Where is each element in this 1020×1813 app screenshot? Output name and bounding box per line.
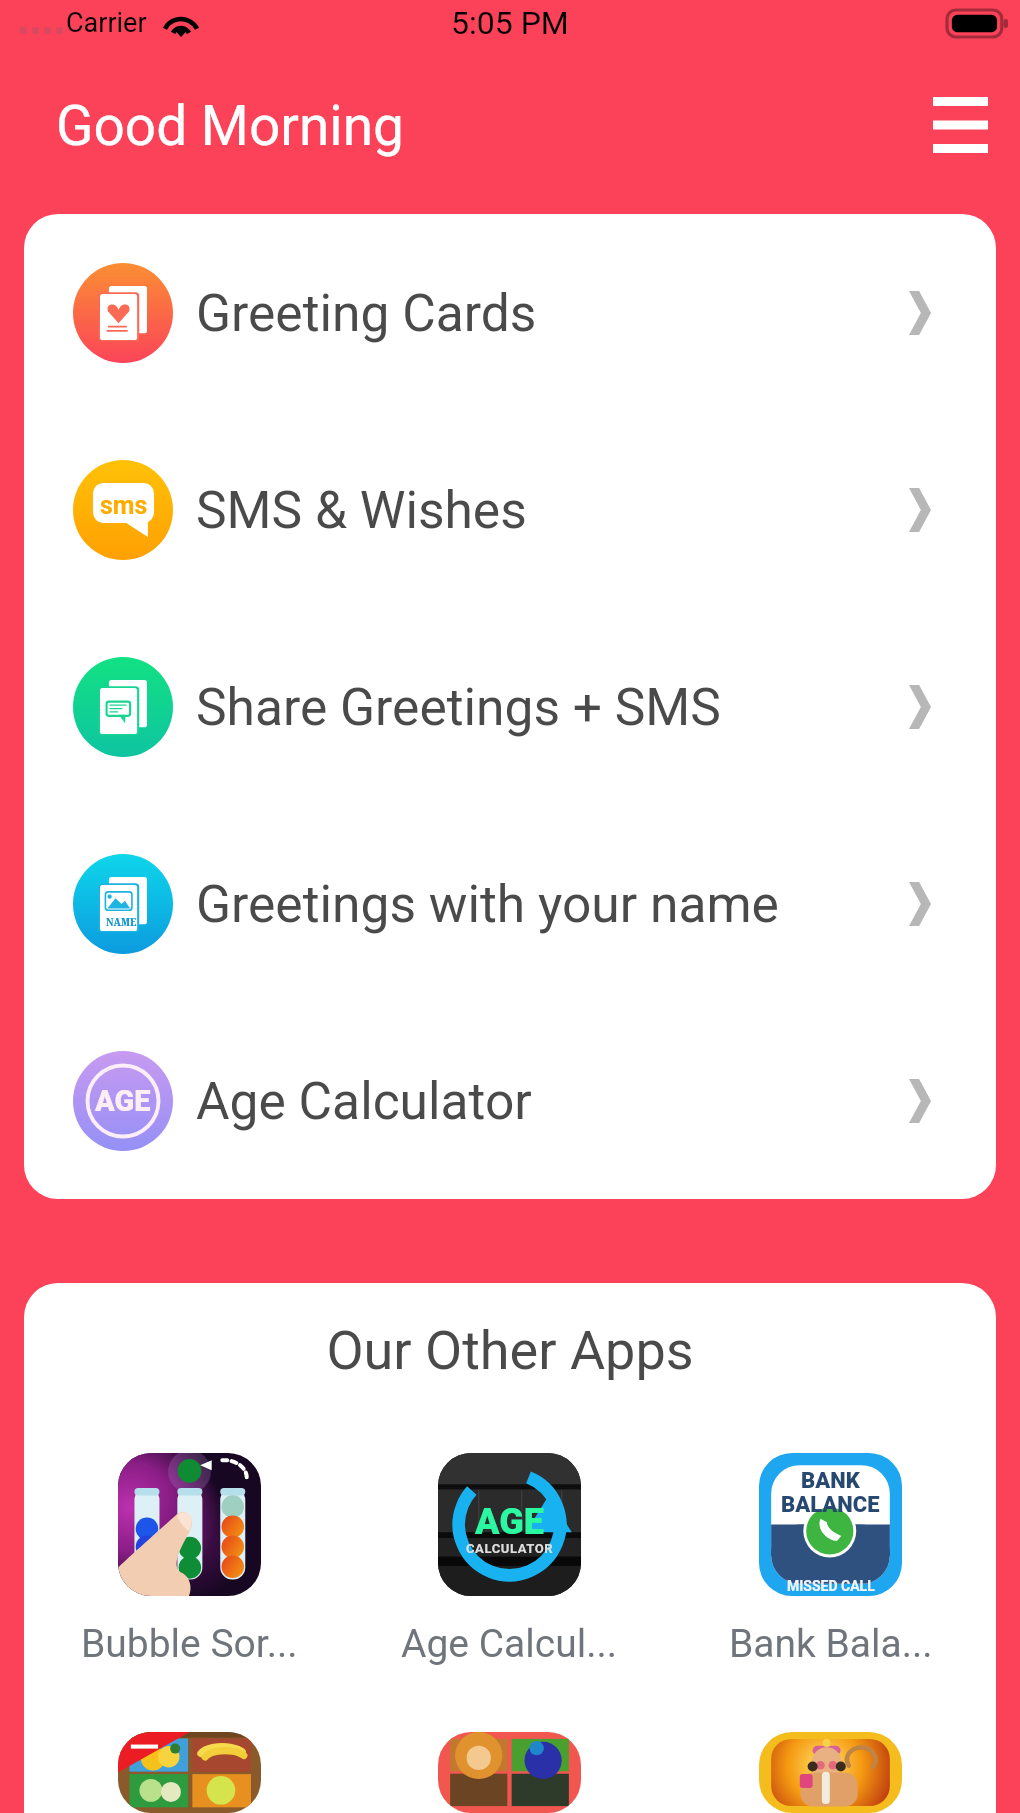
staticText: Greetings with your name <box>196 874 779 934</box>
staticText: BALANCE <box>781 1492 880 1518</box>
staticText: MISSED CALL <box>787 1578 875 1594</box>
staticText: Age Calculator <box>196 1071 532 1131</box>
button[interactable]: Animals and Birds <box>349 1732 670 1813</box>
button[interactable]: Bubble Sor... <box>29 1453 349 1667</box>
button[interactable]: sms <box>24 411 996 608</box>
button[interactable]: BANK <box>670 1453 991 1667</box>
staticText: Greeting Cards <box>196 283 537 343</box>
staticText: Share Greetings + SMS <box>196 677 721 737</box>
button[interactable]: NAME <box>24 805 996 1002</box>
button[interactable]: Hanuman Chalisa <box>670 1732 991 1813</box>
staticText: AGE <box>475 1501 544 1543</box>
staticText: Carrier <box>66 7 147 39</box>
staticText: Good Morning <box>56 94 404 158</box>
staticText: Age Calcul... <box>401 1621 618 1667</box>
button[interactable]: Fruits and Vegetables HD <box>29 1732 349 1813</box>
staticText: NAME <box>106 915 137 929</box>
staticText: CALCULATOR <box>466 1541 554 1556</box>
staticText: 5:05 PM <box>451 4 569 42</box>
staticText: SMS & Wishes <box>196 480 527 540</box>
staticText: Our Other Apps <box>24 1319 996 1382</box>
button[interactable]: AGE <box>349 1453 670 1667</box>
staticText: AGE <box>95 1084 151 1118</box>
button[interactable]: Share Greetings + SMS <box>24 608 996 805</box>
staticText: BANK <box>801 1468 860 1494</box>
button[interactable]: Greeting Cards <box>24 214 996 411</box>
staticText: Bubble Sor... <box>81 1621 298 1667</box>
button[interactable]: Menu <box>916 81 1004 169</box>
staticText: sms <box>100 491 148 520</box>
button[interactable]: AGE <box>24 1002 996 1199</box>
staticText: Bank Bala... <box>729 1621 933 1667</box>
